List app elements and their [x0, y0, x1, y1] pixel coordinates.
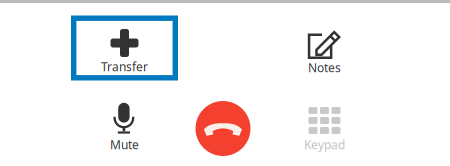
button[interactable]: Keypad	[271, 89, 378, 154]
staticText: Transfer	[101, 58, 148, 74]
button[interactable]: End call	[195, 101, 250, 156]
staticText: Notes	[308, 59, 341, 75]
button[interactable]: Notes	[271, 16, 378, 81]
staticText: Keypad	[304, 136, 345, 152]
button[interactable]: Mute	[71, 89, 178, 154]
staticText: Mute	[110, 136, 139, 152]
button[interactable]: Transfer	[71, 15, 178, 80]
